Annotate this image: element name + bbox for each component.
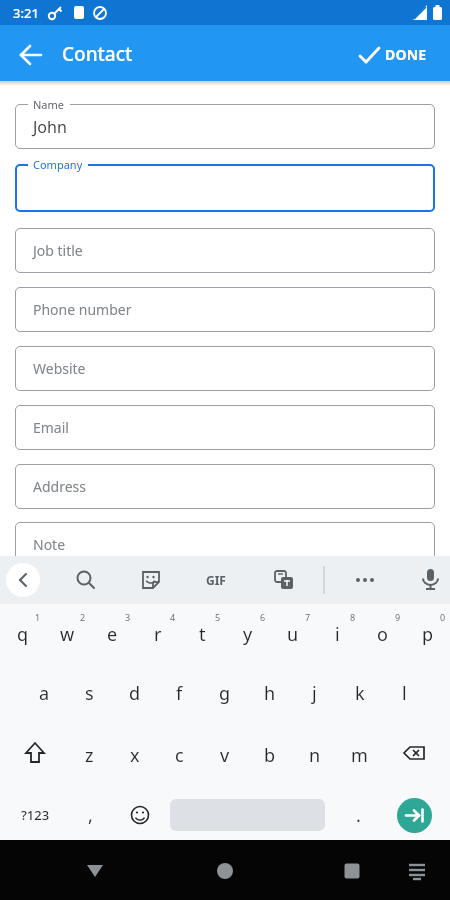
button[interactable]: [13, 37, 49, 73]
staticText: 4: [170, 611, 176, 623]
staticText: DONE: [385, 45, 427, 64]
button[interactable]: w: [45, 605, 90, 663]
button[interactable]: [118, 786, 163, 844]
staticText: Company: [33, 157, 83, 172]
staticText: 3: [125, 611, 131, 623]
button[interactable]: DONE: [350, 35, 440, 73]
button[interactable]: GIF: [196, 560, 236, 600]
button[interactable]: Phone number: [15, 287, 435, 332]
button[interactable]: [66, 560, 106, 600]
button[interactable]: f: [157, 664, 202, 722]
staticText: 6: [260, 611, 266, 623]
staticText: b: [264, 743, 276, 768]
button[interactable]: r: [135, 605, 180, 663]
button[interactable]: [6, 563, 40, 597]
staticText: 5: [215, 611, 221, 623]
staticText: p: [422, 622, 434, 647]
staticText: e: [107, 622, 118, 647]
button[interactable]: n: [292, 726, 337, 784]
staticText: Name: [33, 97, 65, 112]
button[interactable]: l: [382, 664, 427, 722]
button[interactable]: [205, 850, 245, 890]
staticText: Phone number: [33, 300, 132, 319]
staticText: l: [402, 681, 407, 706]
button[interactable]: [390, 726, 440, 784]
button[interactable]: ?123: [10, 786, 60, 844]
staticText: w: [60, 622, 75, 647]
button[interactable]: Address: [15, 464, 435, 509]
staticText: d: [129, 681, 141, 706]
staticText: q: [17, 622, 29, 647]
button[interactable]: d: [112, 664, 157, 722]
staticText: j: [312, 681, 317, 706]
button[interactable]: b: [247, 726, 292, 784]
staticText: k: [355, 681, 365, 706]
button[interactable]: Job title: [15, 228, 435, 273]
button[interactable]: o: [360, 605, 405, 663]
button[interactable]: p: [405, 605, 450, 663]
button[interactable]: i: [315, 605, 360, 663]
staticText: z: [85, 743, 94, 768]
staticText: 7: [305, 611, 311, 623]
staticText: 2: [80, 611, 86, 623]
button[interactable]: [410, 560, 450, 600]
staticText: John: [33, 116, 67, 138]
staticText: ?123: [21, 806, 50, 824]
button[interactable]: a: [22, 664, 67, 722]
button[interactable]: Website: [15, 346, 435, 391]
staticText: 1: [35, 611, 41, 623]
button[interactable]: [345, 560, 385, 600]
staticText: f: [176, 681, 183, 706]
button[interactable]: t: [180, 605, 225, 663]
button[interactable]: [398, 850, 438, 890]
button[interactable]: q: [0, 605, 45, 663]
button[interactable]: k: [337, 664, 382, 722]
button[interactable]: x: [112, 726, 157, 784]
staticText: x: [130, 743, 140, 768]
button[interactable]: h: [247, 664, 292, 722]
button[interactable]: u: [270, 605, 315, 663]
staticText: m: [351, 743, 368, 768]
button[interactable]: ,: [68, 786, 113, 844]
staticText: a: [39, 681, 50, 706]
button[interactable]: [10, 726, 60, 784]
staticText: 0: [440, 611, 446, 623]
staticText: u: [287, 622, 299, 647]
staticText: Email: [33, 418, 69, 437]
button[interactable]: g: [202, 664, 247, 722]
button[interactable]: [264, 560, 304, 600]
button[interactable]: [131, 560, 171, 600]
staticText: 9: [395, 611, 401, 623]
staticText: y: [243, 622, 253, 647]
staticText: Note: [33, 535, 66, 554]
staticText: Contact: [62, 41, 133, 67]
staticText: h: [264, 681, 276, 706]
button[interactable]: v: [202, 726, 247, 784]
staticText: ,: [88, 803, 93, 828]
button[interactable]: [332, 850, 372, 890]
button[interactable]: s: [67, 664, 112, 722]
button[interactable]: c: [157, 726, 202, 784]
button[interactable]: z: [67, 726, 112, 784]
button[interactable]: m: [337, 726, 382, 784]
staticText: Job title: [33, 241, 83, 260]
staticText: Address: [33, 477, 86, 496]
button[interactable]: .: [336, 786, 381, 844]
staticText: g: [219, 681, 231, 706]
button[interactable]: Email: [15, 405, 435, 450]
button[interactable]: j: [292, 664, 337, 722]
staticText: o: [377, 622, 388, 647]
button[interactable]: [75, 850, 115, 890]
button[interactable]: e: [90, 605, 135, 663]
staticText: i: [335, 622, 340, 647]
staticText: .: [356, 803, 361, 828]
staticText: c: [175, 743, 184, 768]
button[interactable]: Note: [15, 522, 435, 567]
button[interactable]: John: [15, 104, 435, 149]
button[interactable]: [15, 164, 435, 212]
staticText: GIF: [206, 572, 226, 588]
staticText: s: [85, 681, 94, 706]
button[interactable]: [397, 798, 432, 833]
button[interactable]: y: [225, 605, 270, 663]
